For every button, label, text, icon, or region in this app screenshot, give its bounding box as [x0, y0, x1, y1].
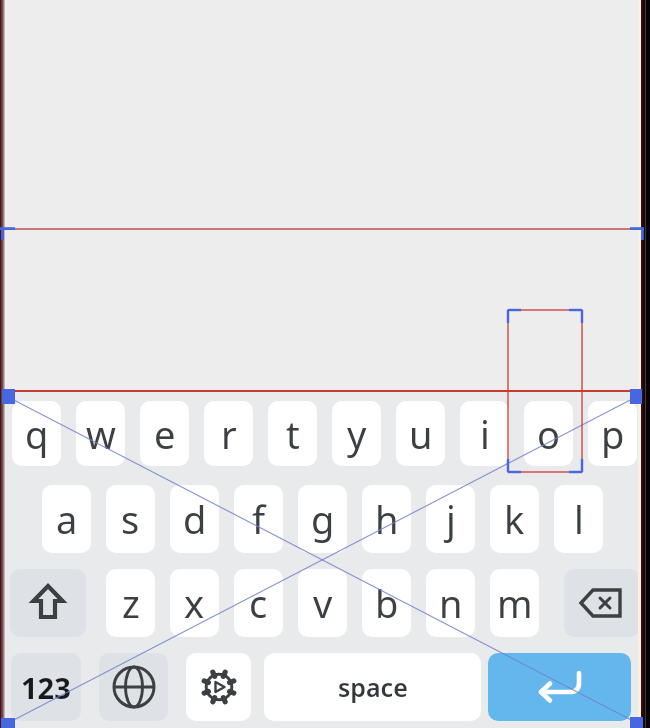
- button[interactable]: [99, 653, 168, 721]
- staticText: w: [86, 408, 116, 460]
- staticText: 123: [21, 668, 71, 707]
- staticText: z: [122, 577, 140, 629]
- staticText: t: [286, 408, 300, 460]
- button[interactable]: e: [140, 401, 189, 466]
- button[interactable]: x: [170, 569, 219, 637]
- staticText: a: [56, 493, 78, 545]
- button[interactable]: [564, 569, 640, 637]
- staticText: h: [375, 493, 399, 545]
- staticText: p: [601, 408, 625, 460]
- staticText: q: [25, 408, 49, 460]
- staticText: u: [409, 408, 433, 460]
- button[interactable]: j: [426, 485, 475, 553]
- staticText: g: [311, 493, 335, 545]
- staticText: l: [574, 493, 584, 545]
- button[interactable]: i: [460, 401, 509, 466]
- staticText: r: [221, 408, 237, 460]
- staticText: b: [375, 577, 399, 629]
- staticText: x: [184, 577, 205, 629]
- button[interactable]: p: [588, 401, 637, 466]
- button[interactable]: u: [396, 401, 445, 466]
- button[interactable]: r: [204, 401, 253, 466]
- button[interactable]: o: [524, 401, 573, 466]
- button[interactable]: a: [42, 485, 91, 553]
- button[interactable]: 123: [11, 653, 81, 721]
- staticText: m: [497, 577, 533, 629]
- button[interactable]: g: [298, 485, 347, 553]
- staticText: n: [439, 577, 463, 629]
- staticText: s: [121, 493, 140, 545]
- button[interactable]: y: [332, 401, 381, 466]
- button[interactable]: h: [362, 485, 411, 553]
- staticText: space: [338, 670, 408, 704]
- button[interactable]: d: [170, 485, 219, 553]
- staticText: e: [154, 408, 176, 460]
- button[interactable]: k: [490, 485, 539, 553]
- button[interactable]: w: [76, 401, 125, 466]
- staticText: i: [480, 408, 490, 460]
- button[interactable]: z: [106, 569, 155, 637]
- staticText: j: [446, 493, 456, 545]
- button[interactable]: n: [426, 569, 475, 637]
- button[interactable]: q: [12, 401, 61, 466]
- button[interactable]: v: [298, 569, 347, 637]
- button[interactable]: l: [554, 485, 603, 553]
- staticText: f: [252, 493, 266, 545]
- button[interactable]: b: [362, 569, 411, 637]
- staticText: c: [249, 577, 268, 629]
- staticText: o: [537, 408, 560, 460]
- staticText: y: [347, 408, 367, 460]
- staticText: v: [313, 577, 333, 629]
- button[interactable]: s: [106, 485, 155, 553]
- button[interactable]: t: [268, 401, 317, 466]
- button[interactable]: m: [490, 569, 539, 637]
- staticText: d: [183, 493, 207, 545]
- button[interactable]: [186, 653, 251, 721]
- button[interactable]: [488, 653, 631, 721]
- button[interactable]: c: [234, 569, 283, 637]
- button[interactable]: space: [264, 653, 481, 721]
- button[interactable]: [10, 569, 86, 637]
- staticText: k: [504, 493, 525, 545]
- button[interactable]: f: [234, 485, 283, 553]
